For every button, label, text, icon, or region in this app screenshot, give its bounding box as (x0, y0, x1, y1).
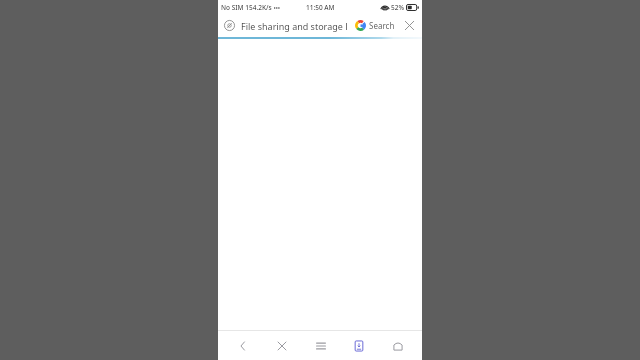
staticText: Search (369, 20, 395, 31)
staticText: 11:50 AM (306, 3, 335, 12)
button[interactable]: Menu (306, 331, 335, 360)
button[interactable]: Tabs (344, 331, 373, 360)
button[interactable]: Stop (267, 331, 296, 360)
button[interactable]: Back (228, 331, 257, 360)
button[interactable]: Site info (222, 18, 237, 33)
button[interactable]: Close (401, 17, 418, 34)
button[interactable]: Home (383, 331, 412, 360)
staticText: 52% (391, 3, 404, 12)
staticText: No SIM 154.2K/s (221, 3, 272, 12)
staticText: File sharing and storage l (241, 20, 348, 32)
button[interactable]: Search (354, 19, 396, 32)
